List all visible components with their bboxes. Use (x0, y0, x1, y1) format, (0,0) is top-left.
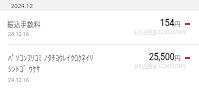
staticText: ﾊﾟｿｺﾝﾌﾘｺﾐ ﾉﾀﾁﾖｳﾚｲｸﾛｸﾈｲﾘ (8, 52, 94, 63)
staticText: 振込手数料 (7, 19, 41, 29)
staticText: 25,500円 (149, 52, 181, 62)
staticText: お引出残高 12,345,678円 (134, 29, 186, 36)
staticText: 154円 (160, 18, 181, 28)
button[interactable]: 振込手数料 (0, 11, 199, 44)
staticText: 24.12.16 (8, 31, 30, 37)
staticText: 2024.12 (11, 2, 33, 9)
button[interactable]: ﾊﾟｿｺﾝﾌﾘｺﾐ ﾉﾀﾁﾖｳﾚｲｸﾛｸﾈｲﾘ (0, 45, 199, 90)
staticText: ｼﾝﾄｺﾞ ｳｹｻ (8, 63, 41, 74)
staticText: 24.12.16 (8, 77, 30, 83)
staticText: お引出残高 12,345,678円 (134, 63, 186, 70)
